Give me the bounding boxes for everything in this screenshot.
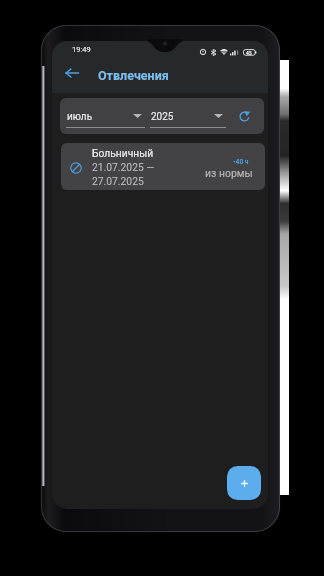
button[interactable]: июль bbox=[66, 100, 145, 131]
staticText: Больничный bbox=[92, 147, 154, 159]
staticText: 27.07.2025 bbox=[92, 175, 144, 187]
button[interactable]: Refresh bbox=[231, 103, 257, 129]
button[interactable]: Back bbox=[58, 59, 86, 87]
staticText: 21.07.2025 — bbox=[92, 161, 155, 173]
staticText: июль bbox=[67, 111, 93, 123]
staticText: Отвлечения bbox=[98, 68, 169, 83]
button[interactable]: 2025 bbox=[150, 100, 226, 131]
button[interactable]: Add bbox=[227, 466, 261, 500]
staticText: из нормы bbox=[205, 167, 253, 179]
staticText: -40 ч bbox=[233, 158, 249, 166]
staticText: 2025 bbox=[151, 111, 174, 123]
staticText: 45 bbox=[246, 50, 252, 56]
staticText: 19:49 bbox=[72, 45, 91, 54]
button[interactable]: Больничный bbox=[61, 143, 265, 190]
